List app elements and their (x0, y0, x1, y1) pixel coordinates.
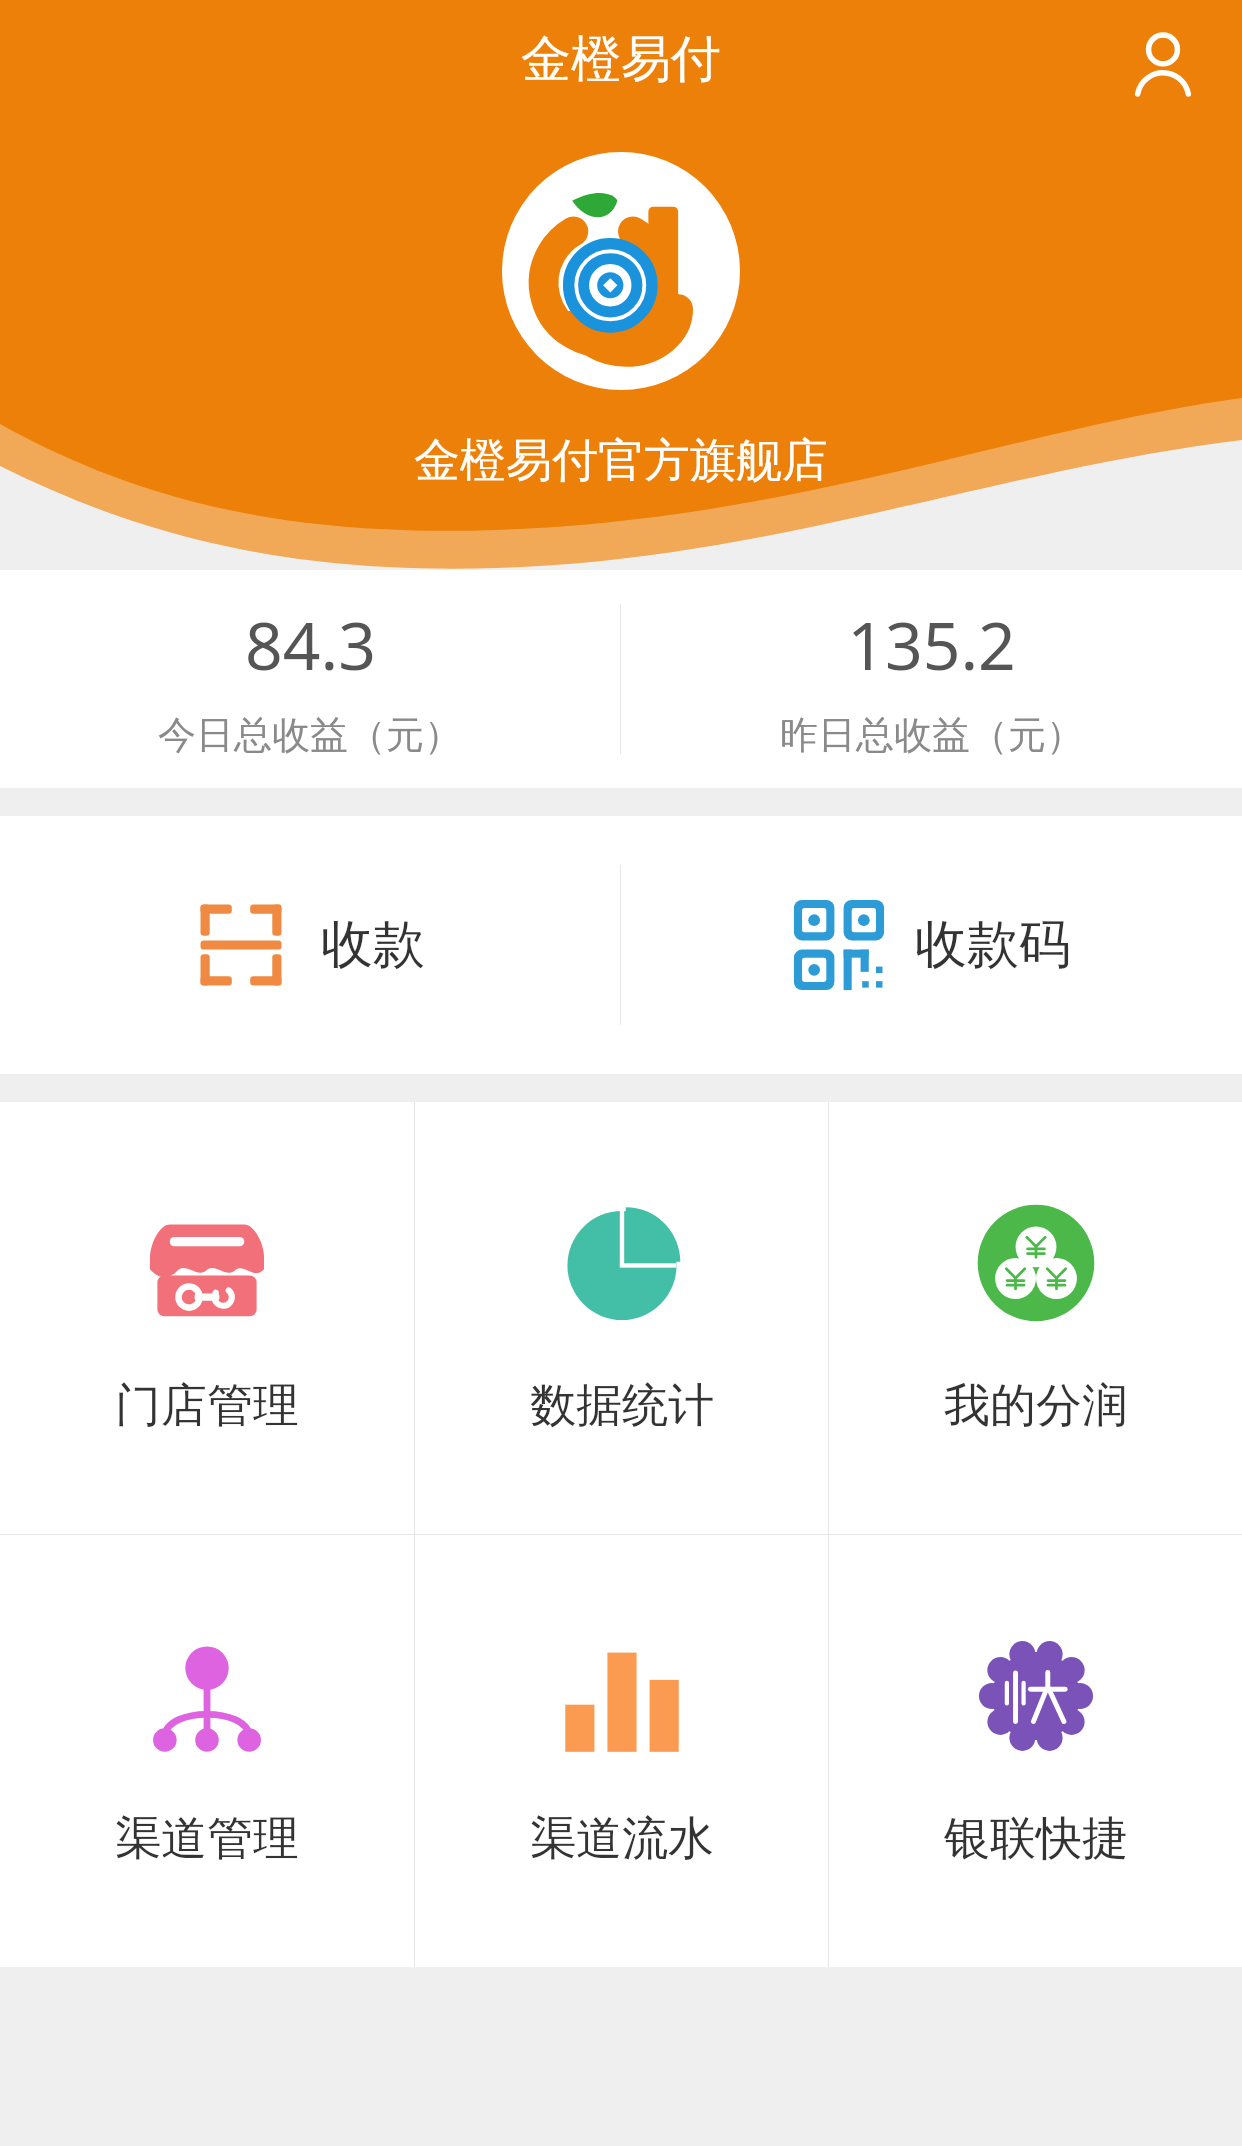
button[interactable]: 收款 (0, 816, 620, 1074)
staticText: 渠道管理 (115, 1810, 299, 1868)
staticText: 渠道流水 (530, 1810, 714, 1868)
staticText: 金橙易付 (521, 28, 721, 91)
button[interactable]: 数据统计 (415, 1102, 828, 1534)
staticText: 门店管理 (115, 1377, 299, 1435)
staticText: 收款码 (915, 912, 1071, 978)
staticText: 我的分润 (944, 1377, 1128, 1435)
staticText: 135.2 (847, 599, 1016, 689)
staticText: 数据统计 (530, 1377, 714, 1435)
staticText: 金橙易付官方旗舰店 (414, 432, 828, 490)
button[interactable]: 84.3 (0, 599, 620, 759)
button[interactable]: 门店管理 (0, 1102, 414, 1534)
staticText: 收款 (321, 912, 425, 978)
staticText: 银联快捷 (944, 1810, 1128, 1868)
button[interactable]: 银联快捷 (829, 1535, 1242, 1967)
button[interactable]: Profile (1124, 26, 1202, 104)
button[interactable]: 我的分润 (829, 1102, 1242, 1534)
staticText: 84.3 (245, 599, 376, 689)
button[interactable]: 渠道流水 (415, 1535, 828, 1967)
button[interactable]: 135.2 (621, 599, 1242, 759)
button[interactable]: 收款码 (621, 816, 1242, 1074)
button[interactable]: 渠道管理 (0, 1535, 414, 1967)
staticText: 今日总收益（元） (158, 711, 462, 759)
staticText: 昨日总收益（元） (780, 711, 1084, 759)
